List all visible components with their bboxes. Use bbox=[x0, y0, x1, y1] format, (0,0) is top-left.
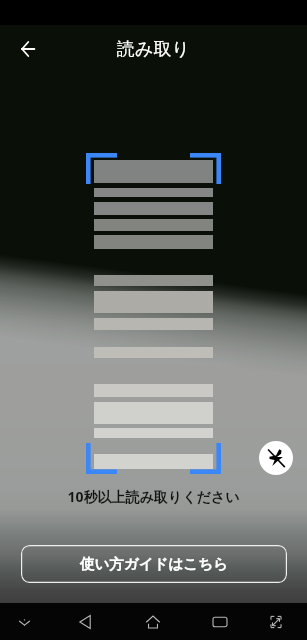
button[interactable]: 使い方ガイドはこちら bbox=[21, 545, 287, 583]
staticText: 使い方ガイドはこちら bbox=[80, 555, 228, 573]
button[interactable]: Hide navigation bar bbox=[14, 612, 34, 632]
button[interactable]: Resize screen bbox=[266, 612, 286, 632]
staticText: 読み取り bbox=[117, 38, 190, 61]
button[interactable]: Home bbox=[143, 612, 163, 632]
button[interactable]: Back bbox=[76, 612, 96, 632]
button[interactable]: Flash off bbox=[259, 441, 293, 475]
staticText: 10秒以上読み取りください bbox=[0, 487, 307, 506]
button[interactable]: Back bbox=[10, 31, 46, 67]
button[interactable]: Recent apps bbox=[210, 612, 230, 632]
